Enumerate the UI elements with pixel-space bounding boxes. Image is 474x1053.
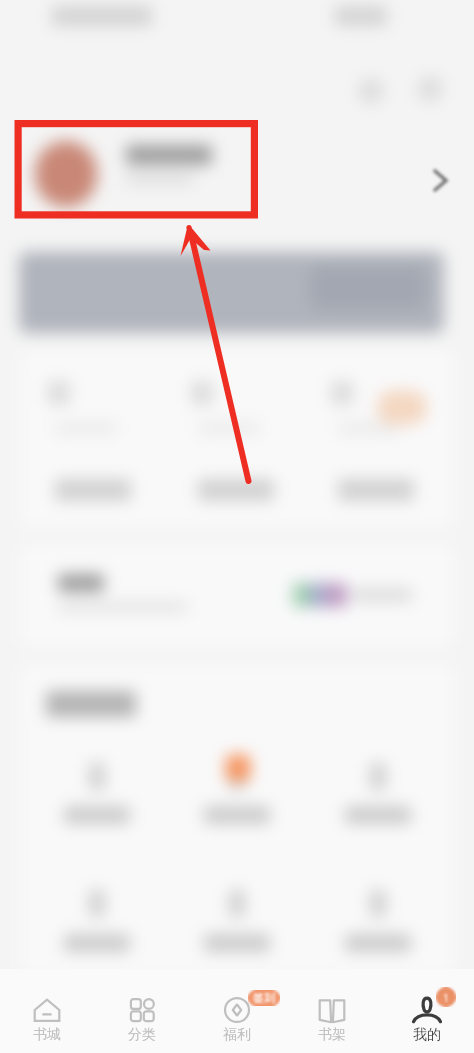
staticText: 1 [443, 990, 450, 1005]
button[interactable]: 签到 [189, 969, 284, 1053]
staticText: 福利 [223, 1026, 251, 1044]
staticText: 书架 [318, 1026, 346, 1044]
button[interactable]: 书架 [284, 969, 379, 1053]
other: More [433, 169, 449, 192]
button[interactable]: 分类 [94, 969, 189, 1053]
staticText: 分类 [128, 1026, 156, 1044]
staticText: 我的 [413, 1026, 441, 1044]
staticText: 签到 [253, 991, 275, 1005]
button[interactable]: 1 [379, 969, 474, 1053]
button[interactable]: 书城 [0, 969, 94, 1053]
staticText: 书城 [33, 1026, 61, 1044]
